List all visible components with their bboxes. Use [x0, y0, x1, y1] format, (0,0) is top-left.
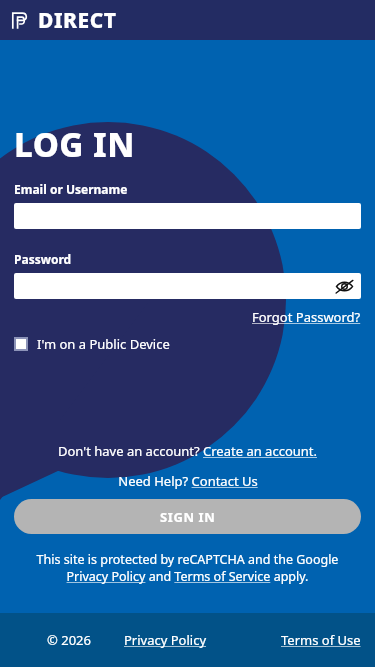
button[interactable]: Email or Username field [14, 203, 361, 229]
button[interactable]: Show password [333, 275, 355, 297]
button[interactable]: Don't have an account? Create an account… [58, 442, 317, 460]
button[interactable]: Terms of Use [281, 631, 361, 649]
button[interactable]: DIRECT [0, 0, 375, 40]
staticText: Email or Username [14, 181, 128, 197]
button[interactable]: Privacy Policy [124, 631, 281, 649]
button[interactable]: Password field [14, 273, 361, 299]
staticText: DIRECT [38, 6, 117, 35]
staticText: © 2026 [14, 631, 124, 649]
button[interactable]: SIGN IN [14, 499, 361, 534]
button[interactable]: I'm on a Public Device [14, 335, 170, 353]
staticText: Password [14, 251, 72, 267]
staticText: SIGN IN [160, 508, 216, 526]
button[interactable]: Forgot Password? [252, 308, 361, 326]
button[interactable]: Need Help? Contact Us [118, 472, 258, 490]
staticText: This site is protected by reCAPTCHA and … [24, 551, 351, 585]
staticText: LOG IN [14, 122, 135, 167]
staticText: I'm on a Public Device [37, 335, 170, 353]
